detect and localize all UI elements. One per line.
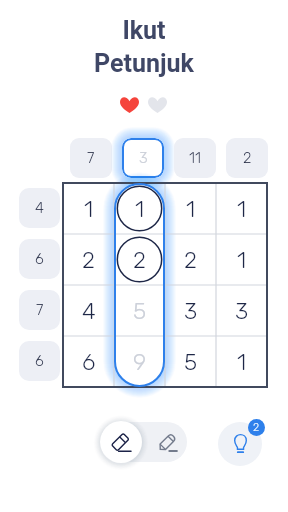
staticText: 6 [82,348,96,375]
staticText: 3 [235,297,249,324]
staticText: Ikut [122,16,166,45]
button[interactable]: 1 [216,183,267,234]
button[interactable]: 9 [114,336,165,387]
button[interactable]: 3 [122,138,164,178]
staticText: Petunjuk [94,49,194,78]
staticText: 1 [186,195,196,222]
button[interactable]: 2 [63,234,114,285]
button[interactable]: Pen [146,422,187,462]
button[interactable]: 7 [70,138,112,178]
button[interactable]: 3 [216,285,267,336]
staticText: 1 [237,195,247,222]
staticText: 7 [36,301,44,319]
staticText: 5 [133,297,147,324]
staticText: 3 [139,149,148,167]
button[interactable]: 5 [114,285,165,336]
button[interactable]: 1 [114,183,165,234]
button[interactable]: 2 [165,234,216,285]
staticText: 11 [189,149,201,167]
button[interactable]: 1 [216,336,267,387]
staticText: 1 [237,246,247,273]
staticText: 2 [253,421,260,434]
staticText: 6 [35,352,44,370]
staticText: 2 [184,246,197,273]
staticText: 1 [84,195,94,222]
staticText: 2 [133,246,146,273]
staticText: 5 [184,348,198,375]
staticText: 1 [237,348,247,375]
staticText: 7 [87,149,95,167]
button[interactable]: 11 [174,138,216,178]
button[interactable]: 1 [165,183,216,234]
staticText: 6 [35,250,44,268]
button[interactable]: 6 [63,336,114,387]
button[interactable]: 1 [63,183,114,234]
staticText: 2 [82,246,95,273]
button[interactable]: 1 [216,234,267,285]
staticText: 9 [133,348,147,375]
button[interactable]: 5 [165,336,216,387]
button[interactable]: 2 [226,138,268,178]
button[interactable]: 4 [19,188,60,228]
button[interactable]: 7 [19,290,60,330]
button[interactable]: 2 [114,234,165,285]
button[interactable]: Hint [218,422,262,466]
button[interactable]: 6 [19,239,60,279]
button[interactable]: Eraser [100,421,142,463]
button[interactable]: 6 [19,341,60,381]
staticText: 1 [135,195,145,222]
staticText: 4 [35,199,44,217]
staticText: 4 [82,297,96,324]
staticText: 3 [184,297,198,324]
staticText: 2 [243,149,252,167]
button[interactable]: 3 [165,285,216,336]
button[interactable]: 4 [63,285,114,336]
